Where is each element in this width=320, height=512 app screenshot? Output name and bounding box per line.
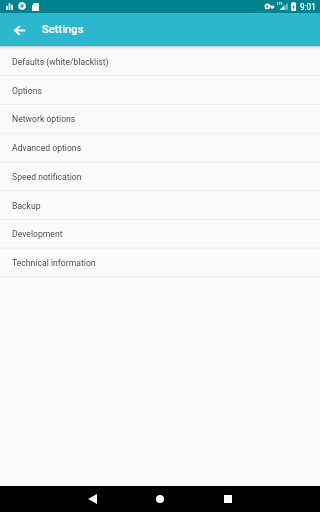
staticText: Advanced options [12, 143, 82, 153]
button[interactable]: Back [79, 486, 105, 512]
button[interactable]: Backup [0, 191, 320, 220]
button[interactable]: Technical information [0, 248, 320, 277]
staticText: 9:01 [300, 2, 316, 12]
staticText: Development [12, 229, 63, 239]
staticText: Speed notification [12, 172, 82, 182]
button[interactable]: Options [0, 76, 320, 105]
staticText: Backup [12, 201, 41, 211]
button[interactable]: Home [147, 486, 173, 512]
staticText: Defaults (white/blacklist) [12, 57, 109, 67]
button[interactable]: Defaults (white/blacklist) [0, 47, 320, 76]
staticText: Technical information [12, 258, 96, 268]
staticText: Settings [42, 23, 84, 36]
button[interactable]: Speed notification [0, 162, 320, 191]
button[interactable]: Navigate up [3, 13, 36, 46]
staticText: Options [12, 86, 42, 96]
button[interactable]: Network options [0, 104, 320, 133]
button[interactable]: Development [0, 219, 320, 248]
staticText: Network options [12, 114, 76, 124]
button[interactable]: Recent apps [215, 486, 241, 512]
button[interactable]: Advanced options [0, 133, 320, 162]
